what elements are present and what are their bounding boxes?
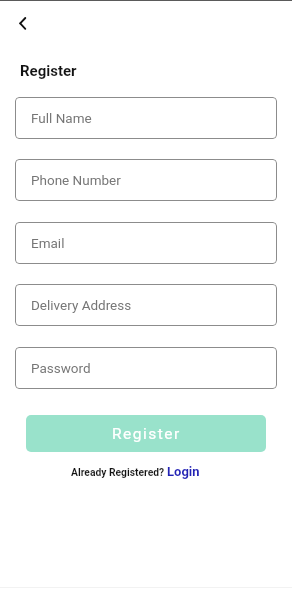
button[interactable]: Email (15, 222, 277, 264)
staticText: Delivery Address (31, 297, 132, 313)
staticText: Register (112, 425, 181, 443)
staticText: Login (167, 464, 200, 479)
button[interactable]: Password (15, 347, 277, 389)
button[interactable]: Back (11, 12, 37, 38)
button[interactable]: Register (26, 415, 266, 452)
staticText: Password (31, 360, 91, 376)
staticText: Email (31, 235, 65, 251)
staticText: Already Registered? (71, 466, 165, 478)
staticText: Register (20, 62, 77, 80)
button[interactable]: Delivery Address (15, 284, 277, 326)
staticText: Phone Number (31, 172, 121, 188)
button[interactable]: Full Name (15, 97, 277, 139)
staticText: Full Name (31, 110, 92, 126)
button[interactable]: Login (167, 464, 200, 479)
button[interactable]: Phone Number (15, 159, 277, 201)
